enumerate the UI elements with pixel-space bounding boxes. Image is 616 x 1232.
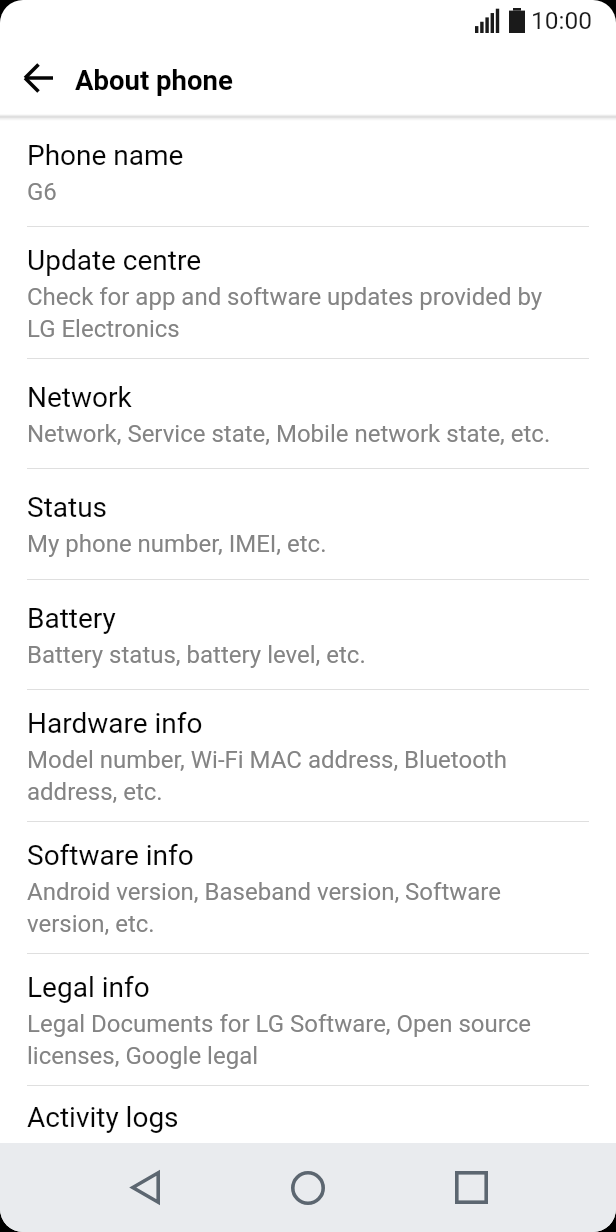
staticText: Status xyxy=(27,489,108,524)
staticText: Battery status, battery level, etc. xyxy=(27,638,366,670)
button[interactable]: Hardware info xyxy=(0,690,616,821)
staticText: Phone name xyxy=(27,137,184,172)
button[interactable]: Recents xyxy=(427,1143,515,1232)
button[interactable]: Back xyxy=(101,1143,189,1232)
button[interactable]: Software info xyxy=(0,822,616,953)
button[interactable]: Update centre xyxy=(0,227,616,358)
staticText: G6 xyxy=(27,175,57,207)
staticText: Battery xyxy=(27,600,116,635)
button[interactable]: Legal info xyxy=(0,954,616,1085)
staticText: Legal info xyxy=(27,969,150,1004)
button[interactable]: Home xyxy=(264,1143,352,1232)
staticText: About phone xyxy=(75,68,233,96)
staticText: Legal Documents for LG Software, Open so… xyxy=(27,1007,558,1071)
staticText: 10:00 xyxy=(531,6,593,35)
staticText: Activity logs xyxy=(27,1099,179,1134)
staticText: My phone number, IMEI, etc. xyxy=(27,527,327,559)
staticText: Network, Service state, Mobile network s… xyxy=(27,417,551,449)
staticText: Android version, Baseband version, Softw… xyxy=(27,875,558,939)
staticText: Check for app and software updates provi… xyxy=(27,280,558,344)
staticText: Model number, Wi-Fi MAC address, Bluetoo… xyxy=(27,743,558,807)
staticText: Network xyxy=(27,379,132,414)
staticText: Hardware info xyxy=(27,705,203,740)
button[interactable]: Status xyxy=(0,469,616,579)
staticText: Update centre xyxy=(27,242,202,277)
button[interactable]: Phone name xyxy=(0,117,616,226)
button[interactable]: Network xyxy=(0,359,616,468)
button[interactable]: Activity logs xyxy=(0,1086,616,1146)
button[interactable]: Battery xyxy=(0,580,616,689)
staticText: Software info xyxy=(27,837,194,872)
button[interactable]: Back xyxy=(10,49,68,107)
